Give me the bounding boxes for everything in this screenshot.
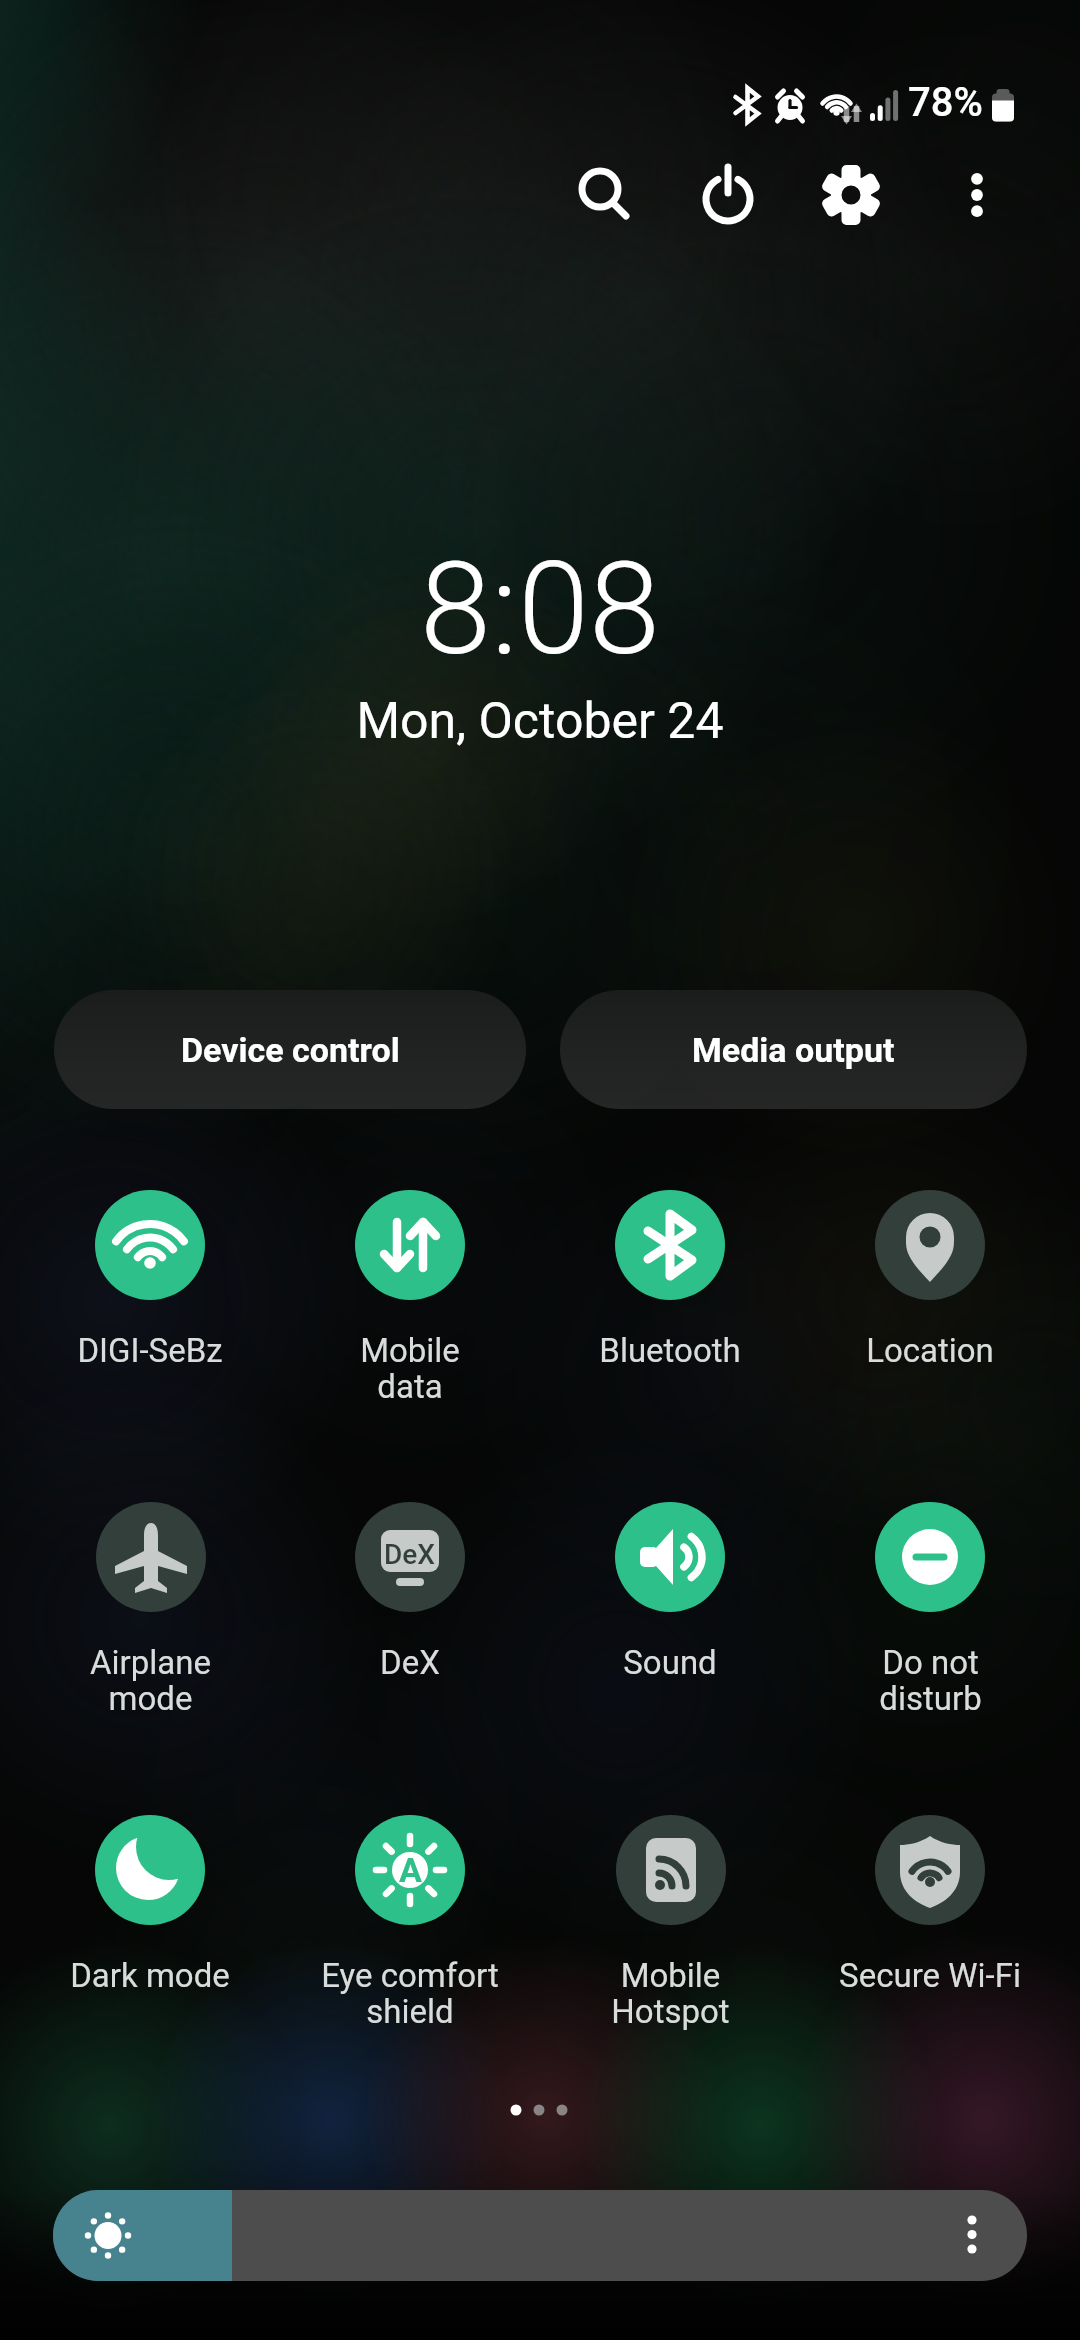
staticText: Bluetooth: [599, 1331, 741, 1370]
staticText: Mobile Hotspot: [611, 1956, 730, 2031]
staticText: Secure Wi-Fi: [839, 1956, 1021, 1995]
staticText: Sound: [623, 1643, 717, 1682]
staticText: A: [399, 1850, 422, 1890]
button[interactable]: DIGI-SeBz: [20, 1190, 280, 1430]
staticText: Media output: [692, 1030, 895, 1070]
button[interactable]: Mobile data: [280, 1190, 540, 1430]
button[interactable]: Sound: [540, 1502, 800, 1742]
button[interactable]: Device control: [54, 990, 526, 1109]
staticText: 8:08: [420, 534, 660, 684]
button[interactable]: Airplane mode: [20, 1502, 280, 1742]
button[interactable]: Settings: [803, 147, 899, 243]
staticText: DeX: [380, 1643, 440, 1682]
staticText: Mobile data: [360, 1331, 460, 1406]
staticText: Eye comfort shield: [321, 1956, 499, 2031]
button[interactable]: Dark mode: [20, 1815, 280, 2055]
staticText: Do not disturb: [879, 1643, 982, 1718]
button[interactable]: More options: [929, 147, 1025, 243]
staticText: Dark mode: [70, 1956, 230, 1995]
button[interactable]: Media output: [560, 990, 1027, 1109]
button[interactable]: A: [280, 1815, 540, 2055]
button[interactable]: Secure Wi-Fi: [800, 1815, 1060, 2055]
staticText: DeX: [384, 1538, 436, 1571]
staticText: Airplane mode: [90, 1643, 211, 1718]
button[interactable]: Bluetooth: [540, 1190, 800, 1430]
staticText: DIGI-SeBz: [77, 1331, 223, 1370]
button[interactable]: DeX: [280, 1502, 540, 1742]
button[interactable]: Brightness settings: [927, 2190, 1017, 2281]
button[interactable]: Location: [800, 1190, 1060, 1430]
button[interactable]: Do not disturb: [800, 1502, 1060, 1742]
staticText: Location: [866, 1331, 994, 1370]
button[interactable]: Power off: [680, 147, 776, 243]
button[interactable]: Brightness: [53, 2190, 1027, 2281]
button[interactable]: Search: [557, 147, 653, 243]
button[interactable]: Mobile Hotspot: [540, 1815, 800, 2055]
staticText: Mon, October 24: [356, 692, 724, 751]
staticText: Device control: [181, 1030, 400, 1070]
staticText: 78%: [908, 79, 983, 126]
